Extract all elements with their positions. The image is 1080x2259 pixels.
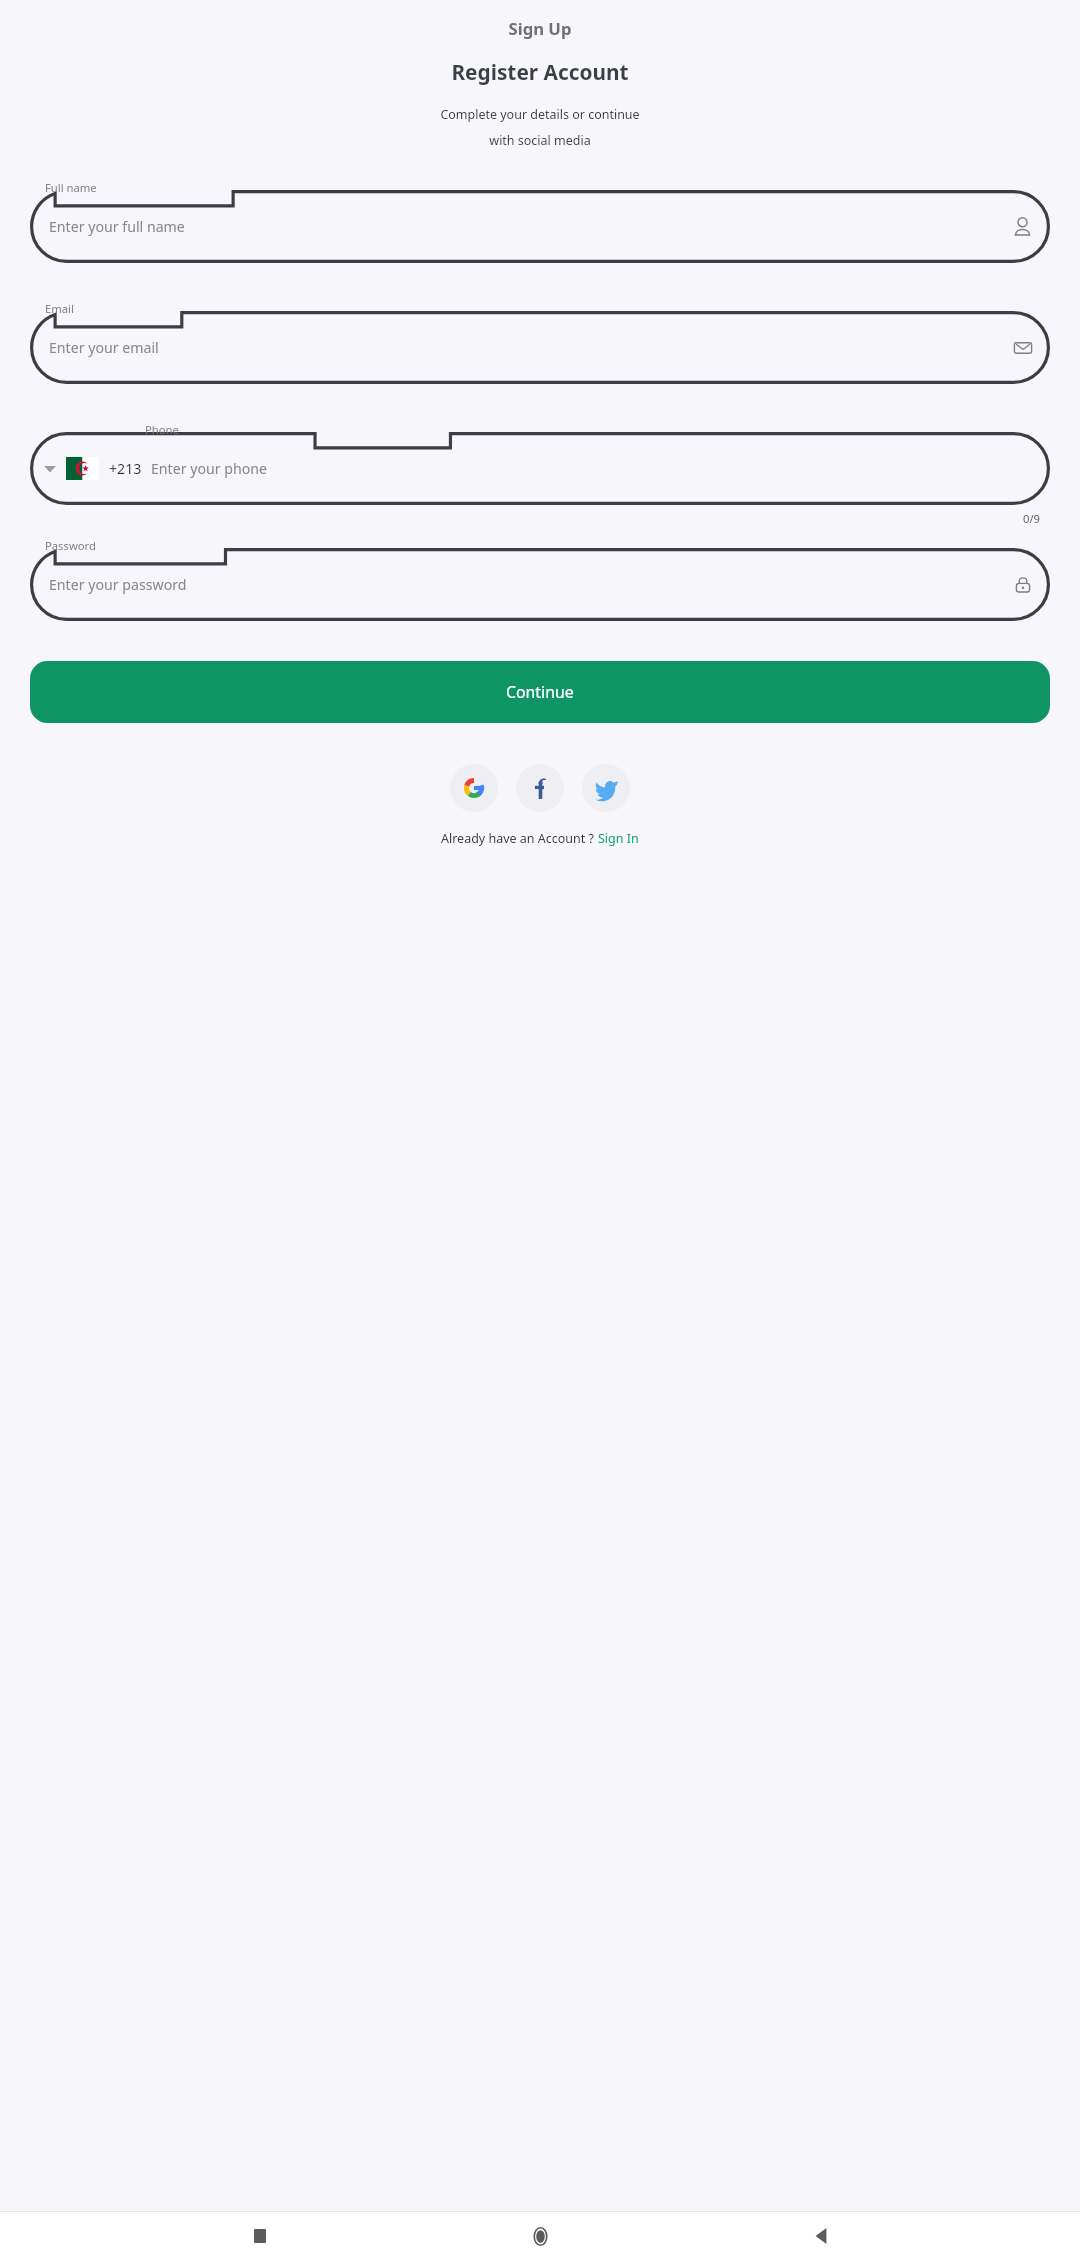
staticText: Full name xyxy=(45,180,97,195)
staticText: Already have an Account ? xyxy=(441,830,594,847)
staticText: Sign In xyxy=(598,830,639,847)
staticText: Enter your full name xyxy=(49,217,185,236)
button[interactable]: Back xyxy=(800,2215,842,2257)
button[interactable]: Home xyxy=(519,2215,561,2257)
staticText: Enter your phone xyxy=(151,459,268,478)
staticText: Continue xyxy=(506,681,574,703)
button[interactable]: Sign up with Twitter xyxy=(582,764,630,812)
button[interactable]: Sign In xyxy=(598,830,639,847)
button[interactable]: Select country code xyxy=(38,457,61,480)
button[interactable]: Phone xyxy=(30,422,1050,505)
staticText: +213 xyxy=(109,459,142,478)
other: Show password xyxy=(1013,575,1033,595)
button[interactable]: Email xyxy=(30,301,1050,384)
staticText: Complete your details or continue xyxy=(0,106,1080,123)
button[interactable]: Full name xyxy=(30,180,1050,263)
button[interactable]: Sign up with Google xyxy=(450,764,498,812)
staticText: Sign Up xyxy=(0,17,1080,40)
button[interactable]: Sign up with Facebook xyxy=(516,764,564,812)
staticText: with social media xyxy=(0,132,1080,149)
staticText: Phone xyxy=(145,422,179,437)
other: Email xyxy=(1013,338,1033,358)
staticText: Enter your password xyxy=(49,575,187,594)
staticText: Enter your email xyxy=(49,338,159,357)
staticText: Email xyxy=(45,301,74,316)
button[interactable]: Password xyxy=(30,538,1050,621)
other: Person xyxy=(1012,216,1033,237)
button[interactable]: Continue xyxy=(30,661,1050,723)
button[interactable]: Recent apps xyxy=(239,2215,281,2257)
staticText: 0/9 xyxy=(0,511,1040,526)
staticText: Password xyxy=(45,538,96,553)
staticText: Register Account xyxy=(0,58,1080,86)
